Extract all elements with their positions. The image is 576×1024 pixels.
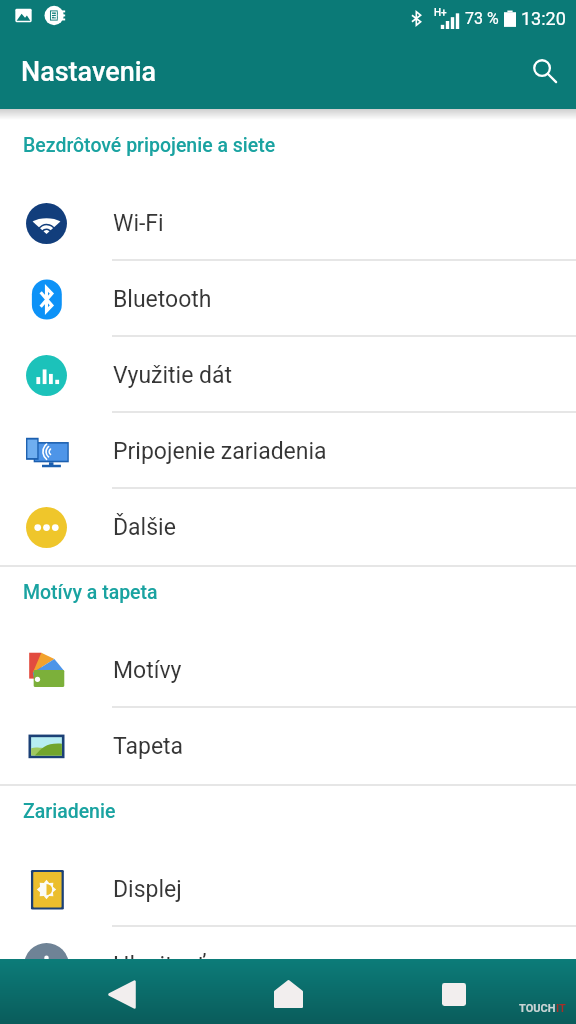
button[interactable]: Home bbox=[256, 962, 320, 1024]
staticText: IT bbox=[556, 1002, 566, 1015]
button[interactable]: Bluetooth bbox=[0, 261, 576, 337]
staticText: Motívy bbox=[113, 657, 182, 684]
staticText: Zariadenie bbox=[23, 800, 116, 823]
button[interactable]: Motívy bbox=[0, 632, 576, 708]
staticText: H+ bbox=[434, 7, 447, 19]
button[interactable]: Tapeta bbox=[0, 708, 576, 784]
staticText: Wi-Fi bbox=[113, 210, 164, 237]
staticText: 73 % bbox=[465, 9, 499, 28]
button[interactable]: Recent apps bbox=[422, 962, 486, 1024]
staticText: Hlasitosť bbox=[113, 952, 206, 959]
staticText: Využitie dát bbox=[113, 362, 233, 389]
button[interactable]: Back bbox=[90, 962, 154, 1024]
button[interactable]: Wi-Fi bbox=[0, 185, 576, 261]
button[interactable]: Pripojenie zariadenia bbox=[0, 413, 576, 489]
staticText: Bluetooth bbox=[113, 286, 212, 313]
staticText: Pripojenie zariadenia bbox=[113, 438, 327, 465]
button[interactable]: Search bbox=[520, 52, 568, 100]
staticText: Motívy a tapeta bbox=[23, 581, 158, 604]
button[interactable]: Ďalšie bbox=[0, 489, 576, 565]
staticText: 13:20 bbox=[521, 8, 566, 29]
staticText: Nastavenia bbox=[21, 56, 157, 88]
button[interactable]: Displej bbox=[0, 851, 576, 927]
staticText: Bezdrôtové pripojenie a siete bbox=[23, 134, 276, 157]
button[interactable]: Využitie dát bbox=[0, 337, 576, 413]
staticText: Tapeta bbox=[113, 733, 184, 760]
staticText: Displej bbox=[113, 876, 182, 903]
staticText: TOUCH bbox=[519, 1002, 556, 1015]
staticText: Ďalšie bbox=[113, 514, 176, 541]
button[interactable]: Hlasitosť bbox=[0, 927, 576, 959]
